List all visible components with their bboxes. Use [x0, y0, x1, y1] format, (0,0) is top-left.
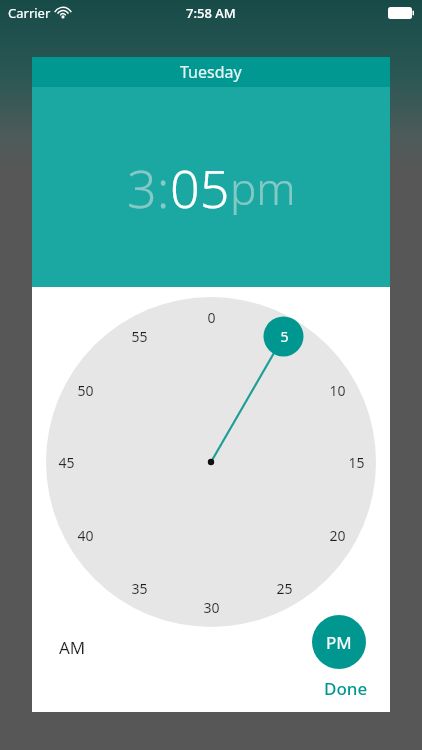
staticText: 55 [131, 327, 148, 346]
button[interactable]: 30 [191, 596, 231, 618]
staticText: 0 [207, 308, 216, 327]
staticText: 45 [58, 453, 75, 472]
staticText: Done [324, 677, 368, 700]
staticText: 25 [276, 579, 293, 598]
button[interactable]: 15 [336, 451, 376, 473]
staticText: AM [59, 636, 86, 659]
button[interactable]: 0 [191, 306, 231, 328]
button[interactable]: 5 [264, 325, 304, 347]
staticText: 30 [203, 598, 220, 617]
button[interactable]: 50 [65, 379, 105, 401]
button[interactable]: 45 [46, 451, 86, 473]
staticText: 40 [77, 526, 94, 545]
button[interactable]: 35 [119, 577, 159, 599]
staticText: 10 [329, 381, 346, 400]
button[interactable]: Done [316, 673, 376, 704]
button[interactable]: PM [312, 615, 366, 669]
button[interactable]: 55 [119, 325, 159, 347]
staticText: 5 [280, 327, 289, 346]
staticText: PM [326, 631, 352, 654]
button[interactable]: 10 [317, 379, 357, 401]
staticText: 7:58 AM [186, 4, 236, 22]
button[interactable]: 3: [127, 152, 170, 223]
button[interactable]: AM [42, 629, 102, 665]
button[interactable]: Tuesday [32, 57, 390, 87]
staticText: 15 [348, 453, 365, 472]
button[interactable]: 25 [264, 577, 304, 599]
staticText: 20 [329, 526, 346, 545]
staticText: 35 [131, 579, 148, 598]
button[interactable]: 40 [65, 524, 105, 546]
button[interactable]: 05 [170, 152, 230, 223]
button[interactable]: 0 [32, 287, 390, 627]
button[interactable]: 20 [317, 524, 357, 546]
staticText: Carrier [8, 4, 51, 22]
button[interactable]: pm [230, 158, 296, 218]
staticText: Tuesday [180, 61, 242, 83]
staticText: 50 [77, 381, 94, 400]
